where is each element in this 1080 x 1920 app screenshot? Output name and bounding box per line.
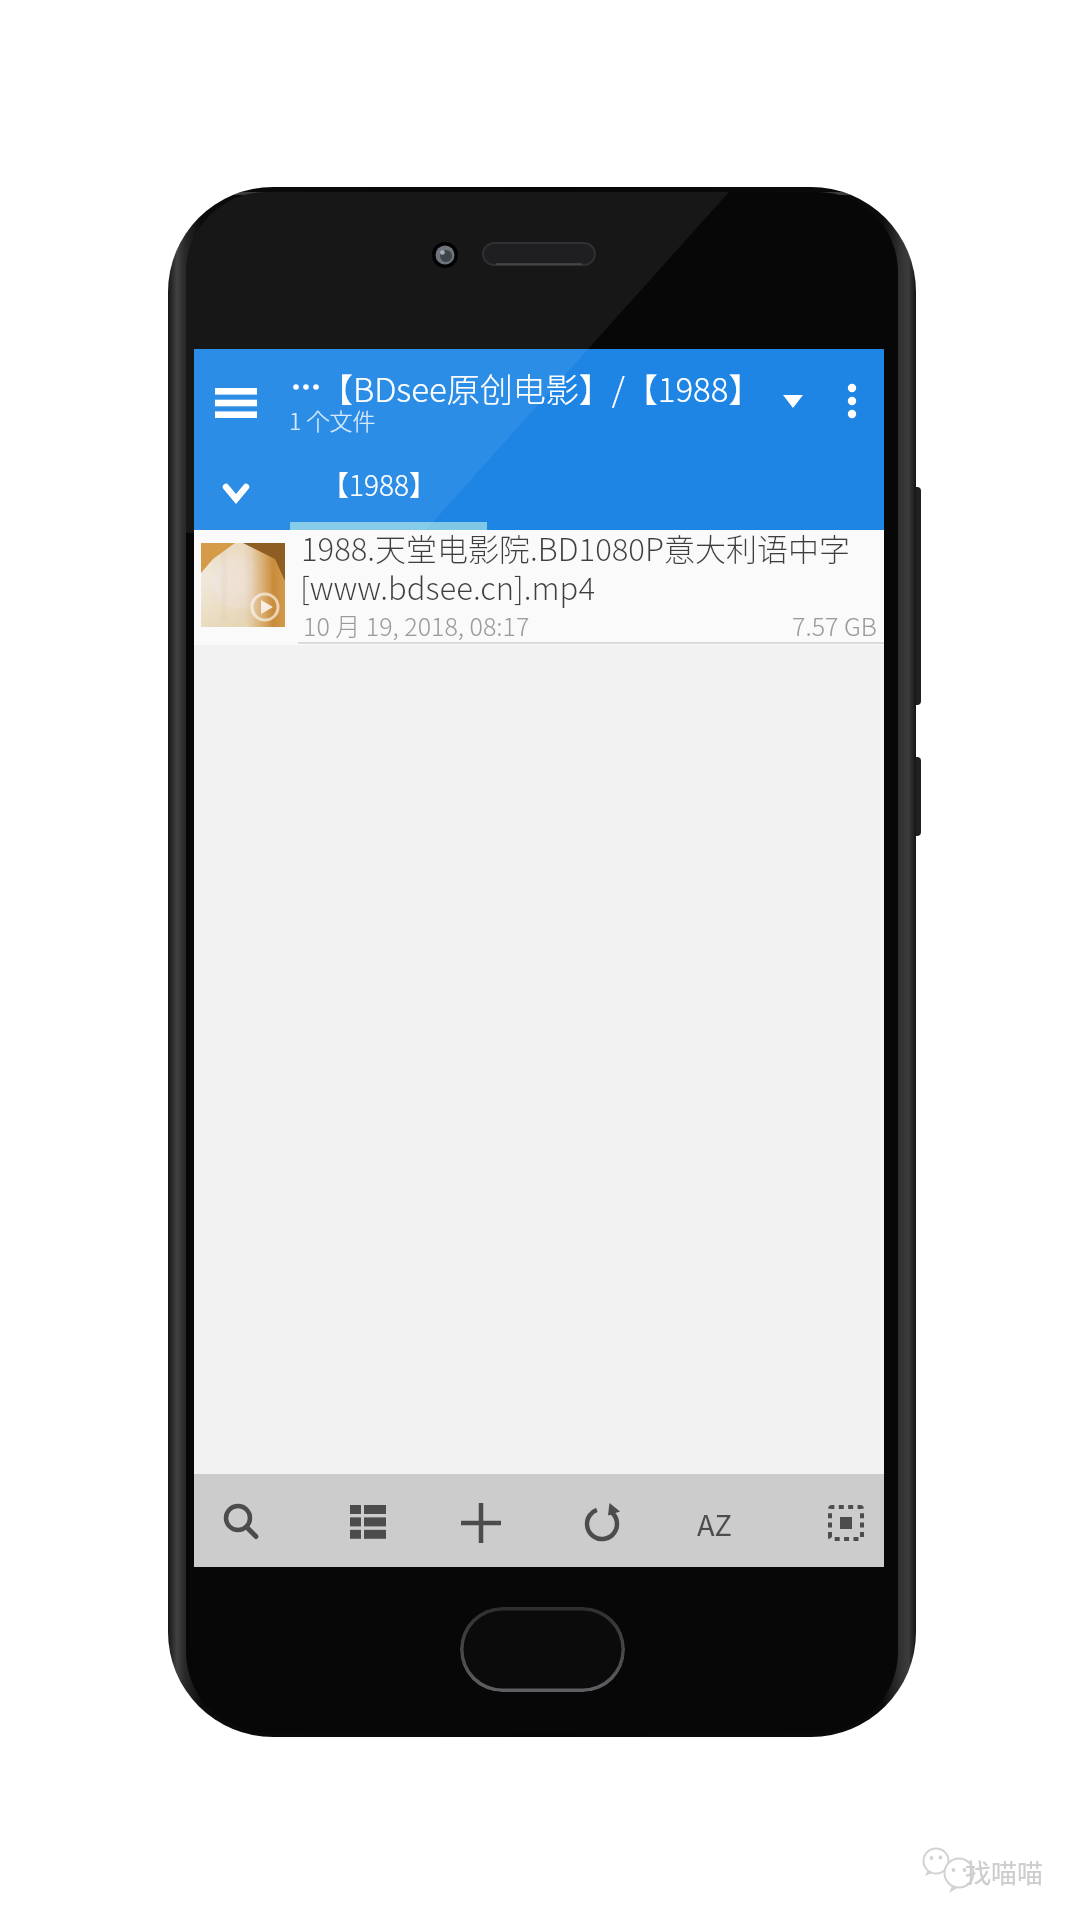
staticText: 【1988】 <box>321 464 437 505</box>
button[interactable] <box>350 1505 386 1541</box>
button[interactable] <box>684 1495 744 1551</box>
button[interactable] <box>225 485 247 501</box>
button[interactable] <box>783 395 803 408</box>
staticText: [www.bdsee.cn].mp4 <box>300 564 595 609</box>
staticText: 1 个文件 <box>289 403 376 436</box>
button[interactable] <box>461 1503 501 1543</box>
button[interactable] <box>222 1503 262 1543</box>
staticText: 10 月 19, 2018, 08:17 <box>303 607 530 643</box>
button[interactable] <box>215 388 257 418</box>
staticText: 【BDsee原创电影】/【1988】 <box>320 364 762 412</box>
staticText: 7.57 GB <box>792 607 877 643</box>
staticText: AZ <box>697 1502 732 1544</box>
button[interactable] <box>290 460 487 530</box>
button[interactable] <box>460 1607 625 1692</box>
button[interactable] <box>194 530 884 645</box>
staticText: 1988.天堂电影院.BD1080P意大利语中字 <box>301 525 850 570</box>
button[interactable] <box>844 382 860 422</box>
button[interactable] <box>582 1503 622 1543</box>
button[interactable] <box>828 1505 864 1541</box>
staticText: 找喵喵 <box>965 1853 1044 1891</box>
